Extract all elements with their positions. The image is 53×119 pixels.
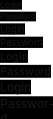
staticText: Login: [0, 80, 31, 94]
staticText: Login: [0, 23, 25, 35]
staticText: Password: [0, 12, 36, 21]
staticText: Login: [0, 50, 28, 63]
staticText: Password: [0, 96, 53, 119]
staticText: Password: [0, 65, 51, 78]
staticText: Login: [0, 0, 22, 10]
staticText: Password: [0, 37, 43, 48]
